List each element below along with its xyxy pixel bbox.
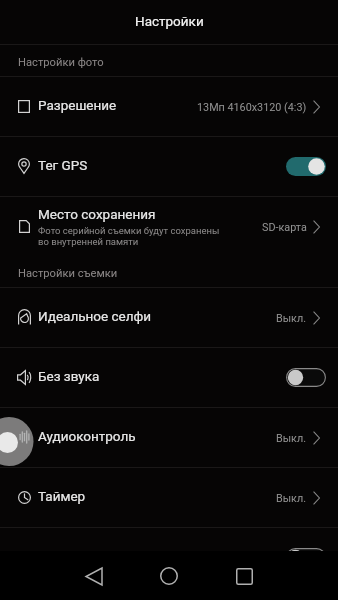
staticText: Настройки съемки bbox=[18, 267, 118, 280]
staticText: Настройки bbox=[135, 13, 204, 29]
button[interactable]: Место сохранения bbox=[0, 197, 338, 256]
staticText: Фото серийной съемки будут сохранены во … bbox=[38, 225, 220, 247]
staticText: Разрешение bbox=[38, 97, 117, 113]
staticText: Идеальное селфи bbox=[38, 308, 152, 324]
staticText: Настройки фото bbox=[18, 56, 104, 69]
button[interactable]: Switch off bbox=[286, 368, 326, 387]
button[interactable]: Аудиоконтроль bbox=[0, 408, 338, 467]
staticText: Место сохранения bbox=[38, 206, 156, 222]
staticText: Таймер bbox=[38, 488, 86, 504]
staticText: Выкл. bbox=[276, 432, 307, 445]
button[interactable]: Switch on bbox=[286, 157, 326, 176]
staticText: Аудиоконтроль bbox=[38, 428, 136, 444]
staticText: Тег GPS bbox=[38, 157, 88, 173]
staticText: Без звука bbox=[38, 368, 100, 384]
staticText: 13Мп 4160x3120 (4:3) bbox=[197, 101, 307, 114]
button[interactable]: Switch off bbox=[286, 548, 326, 567]
button[interactable]: Идеальное селфи bbox=[0, 288, 338, 347]
button[interactable]: Распознавание bbox=[0, 528, 338, 587]
button[interactable]: Разрешение bbox=[0, 77, 338, 136]
button[interactable]: Recent apps bbox=[228, 560, 260, 592]
staticText: Выкл. bbox=[276, 492, 307, 505]
staticText: SD-карта bbox=[262, 221, 307, 234]
staticText: Выкл. bbox=[276, 312, 307, 325]
button[interactable]: Тег GPS bbox=[0, 137, 338, 196]
button[interactable]: Home bbox=[153, 560, 185, 592]
button[interactable]: Таймер bbox=[0, 468, 338, 527]
button[interactable]: Без звука bbox=[0, 348, 338, 407]
button[interactable]: Back bbox=[78, 560, 110, 592]
